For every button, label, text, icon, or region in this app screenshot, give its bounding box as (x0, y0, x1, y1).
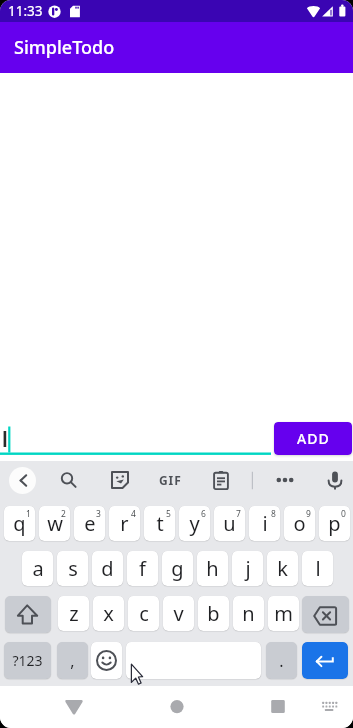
button[interactable]: Stickers (104, 464, 136, 496)
button[interactable]: Voice input (319, 464, 351, 496)
staticText: SimpleTodo (14, 35, 115, 60)
staticText: l (315, 555, 321, 582)
staticText: 0 (341, 508, 346, 520)
button[interactable]: l (302, 551, 333, 586)
staticText: q (13, 510, 26, 537)
staticText: 1 (26, 508, 31, 520)
button[interactable]: Search (52, 464, 84, 496)
button[interactable]: d (92, 551, 123, 586)
staticText: 4 (131, 508, 136, 520)
staticText: 7 (236, 508, 241, 520)
button[interactable]: , (57, 642, 88, 679)
staticText: h (206, 555, 219, 582)
staticText: k (277, 555, 288, 582)
button[interactable]: b (198, 596, 229, 631)
staticText: s (68, 555, 78, 582)
staticText: , (70, 650, 75, 672)
staticText: 2 (61, 508, 66, 520)
button[interactable]: m (268, 596, 299, 631)
button[interactable]: Back (9, 467, 36, 494)
button[interactable]: Recents (257, 686, 299, 728)
button[interactable] (91, 642, 122, 679)
button[interactable]: h (197, 551, 228, 586)
staticText: 5 (166, 508, 171, 520)
button[interactable] (0, 419, 271, 461)
button[interactable]: s (57, 551, 88, 586)
staticText: g (171, 555, 184, 582)
staticText: b (207, 600, 220, 627)
staticText: r (120, 510, 129, 537)
button[interactable]: f (127, 551, 158, 586)
staticText: p (328, 510, 341, 537)
staticText: f (139, 555, 146, 582)
button[interactable]: i (249, 506, 280, 541)
button[interactable]: u (214, 506, 245, 541)
staticText: w (47, 510, 63, 537)
staticText: j (245, 555, 251, 582)
staticText: GIF (159, 472, 182, 488)
staticText: n (242, 600, 255, 627)
button[interactable]: w (39, 506, 70, 541)
button[interactable]: x (93, 596, 124, 631)
staticText: 8 (271, 508, 276, 520)
button[interactable]: k (267, 551, 298, 586)
button[interactable]: Home (156, 686, 198, 728)
staticText: d (101, 555, 114, 582)
staticText: t (156, 510, 164, 537)
button[interactable] (126, 642, 261, 679)
staticText: i (262, 510, 268, 537)
staticText: 9 (306, 508, 311, 520)
staticText: v (173, 600, 184, 627)
staticText: y (189, 510, 200, 537)
button[interactable]: ?123 (4, 642, 51, 679)
staticText: 3 (96, 508, 101, 520)
staticText: c (139, 600, 149, 627)
button[interactable]: ADD (274, 422, 352, 455)
button[interactable]: t (144, 506, 175, 541)
staticText: a (32, 555, 44, 582)
button[interactable] (302, 642, 348, 679)
staticText: 11:33 (8, 2, 43, 20)
staticText: x (103, 600, 114, 627)
button[interactable]: o (284, 506, 315, 541)
button[interactable]: Back (53, 686, 95, 728)
button[interactable]: . (266, 642, 297, 679)
staticText: . (279, 650, 284, 672)
button[interactable]: Switch keyboard (308, 686, 350, 728)
staticText: e (84, 510, 96, 537)
staticText: ADD (297, 429, 330, 448)
staticText: z (69, 600, 79, 627)
button[interactable]: c (128, 596, 159, 631)
button[interactable]: v (163, 596, 194, 631)
staticText: u (223, 510, 236, 537)
staticText: o (293, 510, 306, 537)
button[interactable]: a (22, 551, 53, 586)
staticText: ?123 (12, 651, 43, 670)
staticText: 6 (201, 508, 206, 520)
button[interactable] (5, 596, 51, 633)
button[interactable]: GIF (156, 466, 184, 494)
button[interactable]: n (233, 596, 264, 631)
button[interactable]: g (162, 551, 193, 586)
button[interactable]: q (4, 506, 35, 541)
button[interactable]: j (232, 551, 263, 586)
staticText: m (274, 600, 293, 627)
button[interactable]: z (58, 596, 89, 631)
button[interactable] (302, 596, 349, 633)
button[interactable]: p (319, 506, 350, 541)
button[interactable]: More options (269, 464, 301, 496)
button[interactable]: r (109, 506, 140, 541)
button[interactable]: y (179, 506, 210, 541)
button[interactable]: Clipboard (205, 464, 237, 496)
button[interactable]: e (74, 506, 105, 541)
